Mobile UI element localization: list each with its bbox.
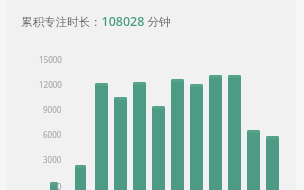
- staticText: 6000: [43, 129, 62, 140]
- staticText: 15000: [39, 54, 62, 65]
- button[interactable]: 累积专注时长：108028 分钟: [21, 13, 171, 30]
- staticText: 12000: [39, 79, 62, 90]
- staticText: 3000: [43, 154, 62, 165]
- staticText: 0: [57, 181, 62, 190]
- button[interactable]: Daily focus minutes bar chart: [0, 0, 304, 190]
- staticText: 9000: [43, 104, 62, 115]
- staticText: 累积专注时长：108028 分钟: [21, 13, 171, 30]
